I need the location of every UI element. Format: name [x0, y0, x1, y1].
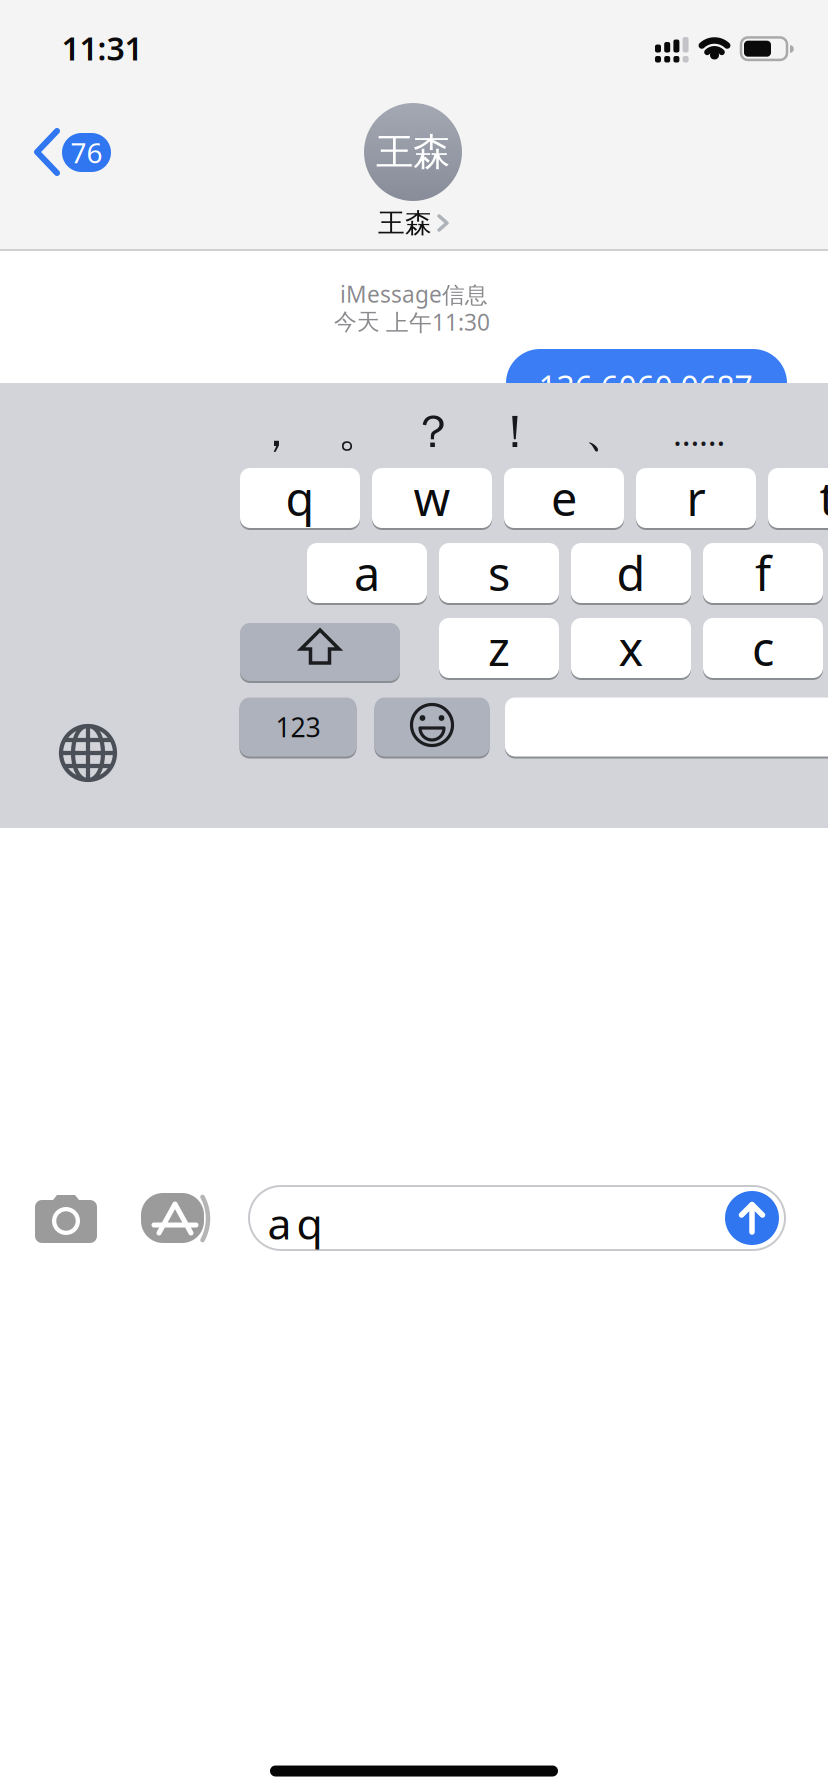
button[interactable]: c	[703, 617, 823, 679]
button[interactable]: r	[636, 467, 756, 529]
button[interactable]: ？	[410, 404, 455, 460]
staticText: t	[819, 467, 828, 529]
button[interactable]: ，	[253, 403, 298, 459]
staticText: 11:31	[61, 27, 142, 69]
staticText: ，	[253, 403, 298, 459]
staticText: e	[551, 467, 577, 529]
staticText: 。	[337, 403, 382, 459]
staticText: 76	[70, 134, 102, 171]
staticText: 王森	[376, 129, 450, 175]
button[interactable]: Shift	[240, 622, 400, 682]
button[interactable]: Emoji	[374, 696, 489, 757]
button[interactable]: Camera	[34, 1194, 98, 1246]
button[interactable]: x	[571, 617, 691, 679]
staticText: 今天	[334, 308, 380, 336]
button[interactable]: a	[249, 1186, 785, 1250]
staticText: x	[618, 617, 643, 679]
staticText: z	[488, 617, 510, 679]
staticText: q	[296, 1195, 322, 1251]
staticText: f	[755, 542, 771, 604]
button[interactable]: Next keyboard	[58, 723, 118, 783]
staticText: a	[267, 1195, 291, 1251]
staticText: q	[285, 467, 314, 529]
staticText: ……	[673, 411, 725, 455]
button[interactable]: d	[571, 542, 691, 604]
button[interactable]: Back	[31, 130, 115, 174]
button[interactable]: 空格	[505, 696, 828, 757]
staticText: s	[488, 542, 510, 604]
staticText: 上午11:30	[386, 307, 490, 337]
button[interactable]: e	[504, 467, 624, 529]
staticText: w	[413, 467, 450, 529]
button[interactable]: 123	[239, 696, 356, 757]
staticText: 136 6060 0687	[538, 366, 752, 408]
button[interactable]: f	[703, 542, 823, 604]
button[interactable]: Send	[725, 1191, 779, 1245]
staticText: 、	[584, 403, 629, 459]
staticText: a	[354, 542, 380, 604]
staticText: r	[686, 467, 705, 529]
button[interactable]: ……	[673, 411, 725, 455]
button[interactable]: iMessage apps	[138, 1190, 210, 1246]
button[interactable]: w	[372, 467, 492, 529]
button[interactable]: 王森	[348, 102, 478, 242]
button[interactable]: z	[439, 617, 559, 679]
button[interactable]: q	[240, 467, 360, 529]
staticText: c	[752, 617, 774, 679]
staticText: 王森	[378, 207, 432, 239]
button[interactable]: 。	[337, 403, 382, 459]
staticText: d	[616, 542, 645, 604]
button[interactable]: 、	[584, 403, 629, 459]
staticText: iMessage信息	[340, 279, 488, 309]
button[interactable]: t	[768, 467, 828, 529]
button[interactable]: a	[307, 542, 427, 604]
button[interactable]: s	[439, 542, 559, 604]
staticText: 123	[275, 709, 320, 745]
staticText: ？	[410, 404, 455, 460]
staticText: ！	[492, 404, 537, 460]
button[interactable]: ！	[492, 404, 537, 460]
